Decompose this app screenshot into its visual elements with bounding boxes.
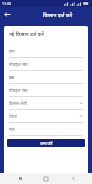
button[interactable]: Back (0, 7, 15, 22)
staticText: गांव (9, 127, 15, 132)
button[interactable] (4, 71, 88, 84)
button[interactable]: जिला (4, 110, 88, 123)
button[interactable]: Back (66, 173, 80, 184)
staticText: किसान श्रेणी (9, 101, 27, 106)
staticText: किसान दर्ज करें (43, 11, 73, 18)
staticText: जमा करें (40, 141, 53, 146)
staticText: मोबाइल नंबर (9, 88, 28, 93)
staticText: जिला (9, 114, 17, 119)
staticText: मोबाइल नंबर (9, 62, 28, 67)
button[interactable]: गांव (4, 123, 88, 136)
button[interactable]: मोबाइल नंबर (4, 84, 88, 97)
staticText: नई किसान दर्ज करें (9, 31, 44, 38)
staticText: नाम (9, 49, 15, 54)
staticText: 11:08 (2, 1, 11, 6)
button[interactable]: नाम (4, 45, 88, 58)
button[interactable]: मोबाइल नंबर (4, 58, 88, 71)
button[interactable]: जमा करें (7, 139, 85, 147)
button[interactable]: Recents (13, 173, 27, 184)
button[interactable]: Home (39, 173, 53, 184)
button[interactable]: किसान श्रेणी (4, 97, 88, 110)
